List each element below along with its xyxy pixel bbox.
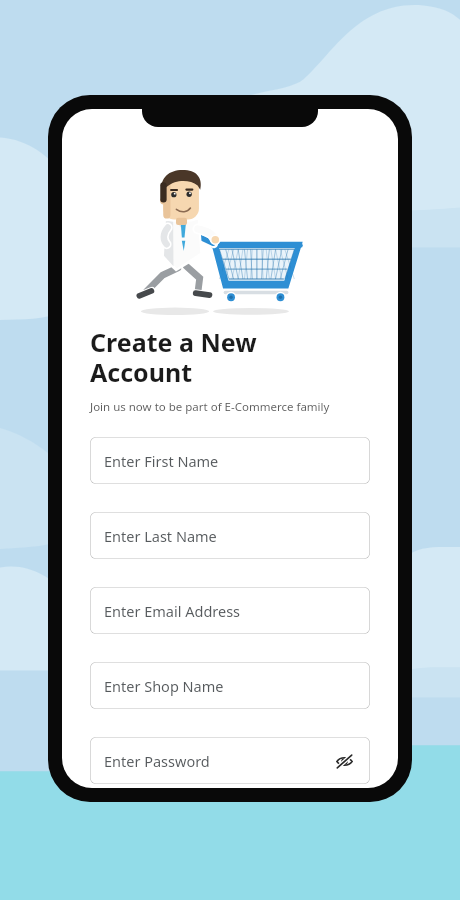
button[interactable]: Enter Email Address xyxy=(90,587,370,634)
staticText: Enter Last Name xyxy=(104,526,356,546)
button[interactable]: Enter Last Name xyxy=(90,512,370,559)
staticText: Join us now to be part of E-Commerce fam… xyxy=(90,399,330,415)
button[interactable]: Show password xyxy=(332,749,356,773)
staticText: Create a New Account xyxy=(90,325,257,390)
button[interactable]: Enter First Name xyxy=(90,437,370,484)
button[interactable]: Enter Password xyxy=(90,737,370,784)
button[interactable]: Enter Shop Name xyxy=(90,662,370,709)
staticText: Enter Shop Name xyxy=(104,676,356,696)
staticText: Enter First Name xyxy=(104,451,356,471)
staticText: Enter Password xyxy=(104,751,332,771)
staticText: Enter Email Address xyxy=(104,601,356,621)
